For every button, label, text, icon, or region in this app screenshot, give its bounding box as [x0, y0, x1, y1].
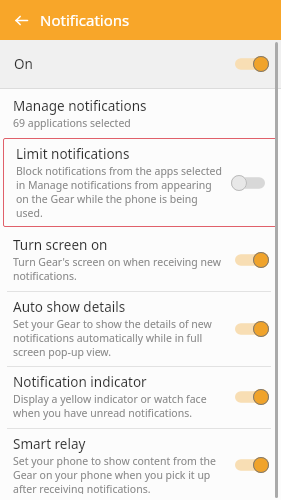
staticText: Manage notifications: [13, 97, 147, 115]
staticText: Auto show details: [13, 298, 126, 316]
button[interactable]: Toggle on: [235, 252, 269, 268]
staticText: Turn Gear's screen on when receiving new…: [13, 255, 229, 283]
staticText: On: [14, 55, 235, 73]
staticText: Limit notifications: [16, 145, 130, 163]
button[interactable]: Limit notifications: [3, 138, 277, 227]
button[interactable]: Auto show details: [0, 292, 281, 366]
button[interactable]: On: [0, 40, 281, 88]
button[interactable]: Toggle on: [235, 389, 269, 405]
staticText: Smart relay: [13, 435, 86, 453]
button[interactable]: Toggle on: [235, 56, 269, 72]
staticText: 69 applications selected: [13, 116, 131, 130]
staticText: Set your Gear to show the details of new…: [13, 317, 229, 359]
button[interactable]: Smart relay: [0, 429, 281, 500]
staticText: Display a yellow indicator or watch face…: [13, 392, 229, 420]
staticText: Notification indicator: [13, 373, 147, 391]
button[interactable]: Manage notifications: [0, 93, 281, 136]
button[interactable]: Toggle on: [235, 457, 269, 473]
staticText: Turn screen on: [13, 236, 108, 254]
button[interactable]: Toggle on: [235, 321, 269, 337]
staticText: Block notifications from the apps select…: [16, 164, 225, 220]
button[interactable]: Toggle off: [231, 175, 265, 191]
staticText: Set your phone to show content from the …: [13, 454, 229, 494]
button[interactable]: Turn screen on: [0, 232, 281, 291]
staticText: Notifications: [40, 10, 130, 30]
button[interactable]: Notification indicator: [0, 367, 281, 428]
button[interactable]: Back: [8, 7, 34, 33]
